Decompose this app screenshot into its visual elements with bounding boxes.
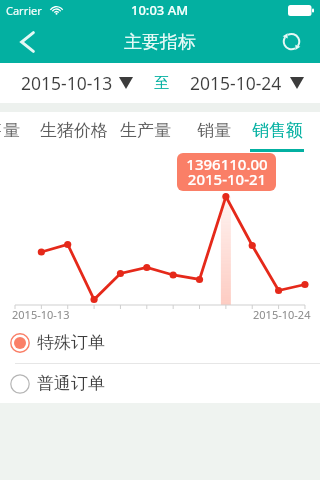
button[interactable]: 生猪价格 [28,112,120,152]
button[interactable]: 销售量 [0,112,32,152]
staticText: 10:03 AM [131,1,189,19]
staticText: 2015-10-24 [253,307,311,322]
button[interactable]: 销售额 [240,112,315,152]
staticText: 普通订单 [37,373,105,394]
staticText: 1396110.00 2015-10-21 [186,154,268,190]
staticText: 生产量 [120,120,171,141]
staticText: 特殊订单 [37,332,105,353]
staticText: 2015-10-24 [190,71,282,95]
staticText: 销售额 [252,120,303,141]
staticText: 至 [154,74,169,93]
button[interactable]: 特殊订单 [0,322,320,363]
button[interactable]: 生产量 [108,112,183,152]
button[interactable]: 2015-10-24 [190,63,304,103]
staticText: 销售量 [0,120,20,141]
button[interactable]: Refresh [274,20,320,63]
staticText: 销量 [197,120,231,141]
staticText: 2015-10-13 [12,307,70,322]
staticText: 生猪价格 [40,120,108,141]
staticText: 2015-10-13 [21,71,113,95]
button[interactable]: 2015-10-13 [21,63,133,103]
button[interactable]: 普通订单 [0,364,320,403]
staticText: Carrier [6,3,42,18]
button[interactable]: Back [0,20,46,63]
button[interactable]: 销量 [185,112,243,152]
staticText: 主要指标 [124,31,196,54]
